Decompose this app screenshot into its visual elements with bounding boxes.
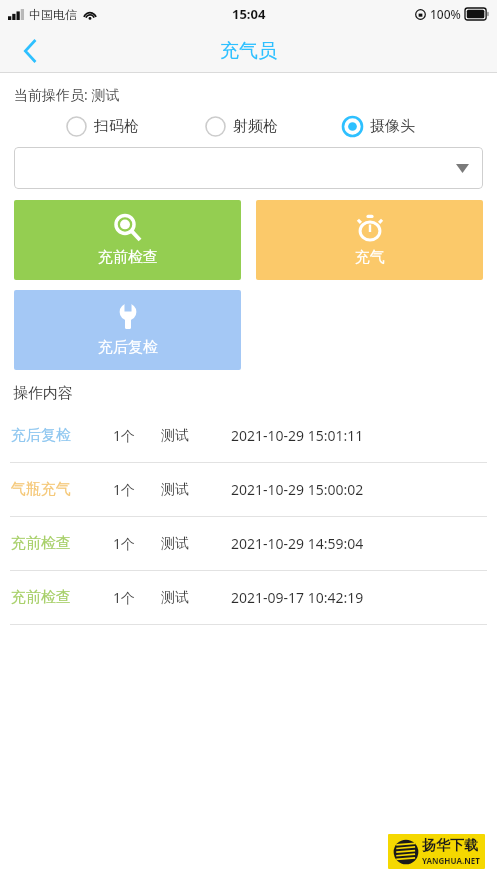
staticText: 15:04 xyxy=(232,5,266,23)
staticText: 充前检查 xyxy=(98,248,158,267)
button[interactable]: 充前检查 xyxy=(0,517,497,570)
button[interactable]: 射频枪 xyxy=(205,114,278,139)
staticText: 摄像头 xyxy=(370,117,415,136)
staticText: 2021-10-29 14:59:04 xyxy=(231,534,364,553)
staticText: 充后复检 xyxy=(11,426,89,445)
button[interactable]: 充前检查 xyxy=(0,571,497,624)
button[interactable]: 扫码枪 xyxy=(66,114,139,139)
staticText: 100% xyxy=(430,6,461,22)
staticText: 当前操作员: 测试 xyxy=(14,85,120,104)
staticText: 操作内容 xyxy=(13,384,73,403)
staticText: 充前检查 xyxy=(11,534,89,553)
button[interactable]: 气瓶充气 xyxy=(0,463,497,516)
button[interactable] xyxy=(14,147,483,189)
staticText: 1个 xyxy=(113,426,161,445)
staticText: 气瓶充气 xyxy=(11,480,89,499)
staticText: 测试 xyxy=(161,481,221,499)
staticText: 中国电信 xyxy=(29,7,77,22)
staticText: YANGHUA.NET xyxy=(422,855,480,866)
staticText: 充气 xyxy=(355,248,385,267)
staticText: 2021-10-29 15:00:02 xyxy=(231,480,364,499)
button[interactable]: 充后复检 xyxy=(14,290,241,370)
button[interactable]: 充前检查 xyxy=(14,200,241,280)
staticText: 扬华下载 xyxy=(422,837,478,855)
staticText: 充气员 xyxy=(220,39,277,63)
button[interactable]: 充后复检 xyxy=(0,409,497,462)
staticText: 2021-09-17 10:42:19 xyxy=(231,588,364,607)
staticText: 1个 xyxy=(113,588,161,607)
staticText: 射频枪 xyxy=(233,117,278,136)
staticText: 1个 xyxy=(113,534,161,553)
staticText: 1个 xyxy=(113,480,161,499)
staticText: 充前检查 xyxy=(11,588,89,607)
button[interactable]: Back xyxy=(10,31,50,71)
staticText: 测试 xyxy=(161,589,221,607)
staticText: 2021-10-29 15:01:11 xyxy=(231,426,364,445)
staticText: 测试 xyxy=(161,427,221,445)
button[interactable]: 摄像头 xyxy=(342,114,415,139)
button[interactable]: 充气 xyxy=(256,200,483,280)
staticText: 扫码枪 xyxy=(94,117,139,136)
staticText: 充后复检 xyxy=(98,338,158,357)
staticText: 测试 xyxy=(161,535,221,553)
